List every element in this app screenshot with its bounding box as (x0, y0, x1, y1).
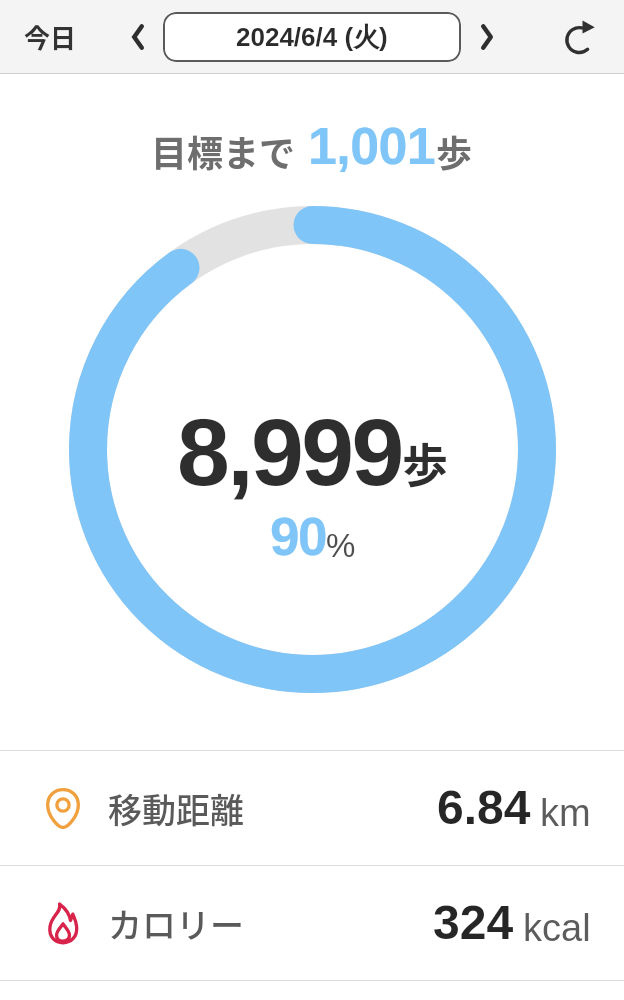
staticText: 歩 (402, 429, 448, 496)
staticText: % (326, 527, 356, 564)
staticText: 1,001 (308, 117, 436, 175)
button[interactable]: 移動距離 (0, 751, 624, 865)
staticText: 目標まで (151, 125, 296, 177)
button[interactable]: 今日 (14, 0, 86, 74)
button[interactable]: Refresh (552, 0, 612, 74)
staticText: カロリー (108, 899, 244, 948)
button[interactable]: カロリー (0, 866, 624, 980)
button[interactable]: Previous day (116, 0, 160, 74)
staticText: 90 (270, 507, 326, 566)
staticText: 移動距離 (108, 784, 244, 833)
staticText: 2024/6/4 (火) (236, 21, 388, 54)
staticText: kcal (523, 907, 591, 949)
staticText: 歩 (436, 125, 473, 177)
button[interactable]: 2024/6/4 (火) (163, 12, 461, 62)
staticText: 324 (433, 896, 514, 950)
staticText: 8,999 (177, 399, 402, 505)
button[interactable]: Next day (465, 0, 509, 74)
staticText: km (540, 792, 591, 834)
staticText: 今日 (24, 18, 77, 56)
staticText: 6.84 (437, 781, 531, 835)
